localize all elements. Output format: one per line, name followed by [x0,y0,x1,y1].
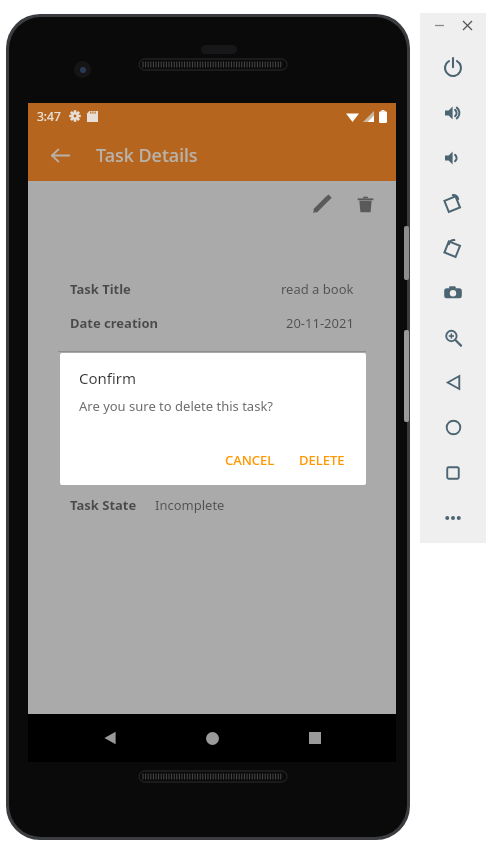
button[interactable]: Zoom [420,315,486,360]
button[interactable]: Minimize [430,16,448,34]
staticText: DELETE [299,451,345,469]
button[interactable]: Recent apps [294,717,336,759]
button[interactable]: Back [42,137,78,173]
button[interactable]: Rotate right [420,225,486,270]
staticText: Task State [70,496,137,514]
staticText: Are you sure to delete this task? [79,397,273,415]
button[interactable]: CANCEL [216,444,284,476]
button[interactable]: Volume down [420,135,486,180]
button[interactable]: Close [458,16,476,34]
button[interactable]: Back [89,717,131,759]
button[interactable]: Rotate left [420,180,486,225]
staticText: CANCEL [225,451,275,469]
button[interactable]: Home [420,405,486,450]
staticText: Confirm [79,368,137,388]
button[interactable]: Overview [420,450,486,495]
staticText: 3:47 [37,108,61,124]
button[interactable]: Subtask checkbox [330,438,354,462]
button[interactable]: Power [420,45,486,90]
staticText: read a book [281,280,354,298]
staticText: Incomplete [155,496,225,514]
button[interactable]: Edit [304,187,338,221]
button[interactable]: Delete [348,187,382,221]
staticText: Task Title [70,280,131,298]
button[interactable]: More [420,495,486,540]
button[interactable]: DELETE [290,444,354,476]
button[interactable]: Back [420,360,486,405]
button[interactable]: Home [191,717,233,759]
button[interactable]: Screenshot [420,270,486,315]
staticText: 20-11-2021 [286,314,354,332]
button[interactable]: Volume up [420,90,486,135]
staticText: Task Details [96,143,198,168]
staticText: Date creation [70,314,158,332]
